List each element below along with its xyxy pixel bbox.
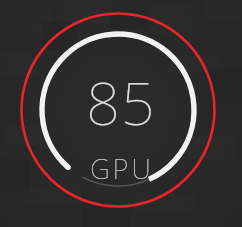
staticText: GPU (90, 150, 154, 187)
button[interactable]: GPU usage gauge, 85 percent (0, 0, 242, 227)
staticText: 85 (86, 62, 156, 142)
